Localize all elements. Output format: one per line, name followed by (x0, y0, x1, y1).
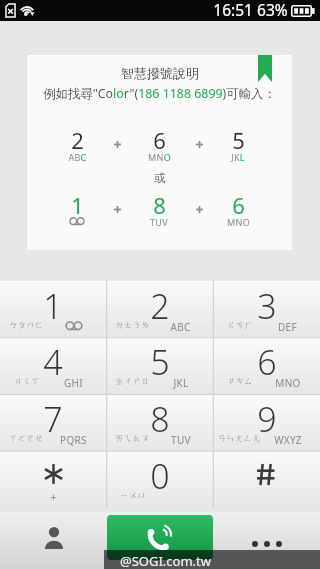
staticText: ㄍㄎㄏ (227, 320, 253, 331)
staticText: 3 (257, 283, 277, 329)
button[interactable]: Contacts (0, 512, 107, 569)
staticText: @SOGI.com.tw (120, 552, 211, 569)
staticText: ㄧㄨㄩ (120, 490, 146, 501)
staticText: 4 (43, 339, 63, 385)
button[interactable]: 6 (213, 337, 320, 394)
staticText: ㄉㄊㄋㄌ (115, 320, 150, 331)
staticText: 或 (154, 171, 166, 185)
button[interactable]: More options (213, 512, 320, 569)
staticText: TUV (150, 216, 168, 228)
staticText: WXYZ (274, 433, 302, 447)
staticText: 2 (150, 283, 170, 329)
staticText: ㄗㄘㄙ (227, 376, 253, 387)
staticText: ㄢㄣㄤㄥㄦ (218, 433, 261, 444)
button[interactable]: + (0, 451, 106, 508)
staticText: DEF (278, 320, 297, 334)
staticText: ㄐㄑㄒ (14, 376, 40, 387)
staticText: TUV (171, 433, 191, 447)
staticText: 例如找尋"Color"(186 1188 6899)可輸入： (43, 85, 276, 102)
staticText: PQRS (60, 433, 87, 447)
staticText: ㄅㄆㄇㄈ (9, 320, 44, 331)
button[interactable]: 0 (106, 451, 213, 508)
staticText: 0 (150, 453, 170, 499)
staticText: 1 (71, 190, 84, 220)
staticText: MNO (227, 216, 250, 228)
staticText: ABC (170, 320, 191, 334)
staticText: MNO (275, 376, 301, 390)
staticText: 智慧撥號說明 (121, 65, 199, 81)
staticText: 6 (232, 190, 245, 220)
staticText: JKL (231, 151, 245, 163)
staticText: JKL (173, 376, 189, 390)
staticText: GHI (64, 376, 83, 390)
button[interactable]: Call (107, 515, 213, 560)
button[interactable]: 5 (106, 337, 213, 394)
staticText: ㄞㄟㄠㄡ (115, 433, 150, 444)
button[interactable]: 4 (0, 337, 106, 394)
staticText: 9 (257, 396, 277, 442)
button[interactable]: 3 (213, 281, 320, 337)
staticText: + (50, 489, 57, 504)
staticText: 6 (153, 125, 166, 155)
staticText: 5 (232, 125, 245, 155)
button[interactable]: 2 (106, 281, 213, 337)
staticText: 8 (153, 190, 166, 220)
button[interactable]: 1 (0, 281, 106, 337)
staticText: ABC (68, 151, 87, 163)
staticText: 5 (150, 339, 170, 385)
button[interactable] (213, 451, 320, 508)
staticText: 2 (71, 125, 84, 155)
staticText: 6 (257, 339, 277, 385)
button[interactable]: 7 (0, 394, 106, 451)
staticText: 7 (43, 396, 63, 442)
staticText: ㄓㄔㄕㄖ (115, 376, 150, 387)
staticText: MNO (148, 151, 171, 163)
button[interactable]: 8 (106, 394, 213, 451)
staticText: 1 (43, 283, 63, 329)
staticText: 8 (150, 396, 170, 442)
staticText: ㄚㄛㄜㄝ (9, 433, 44, 444)
button[interactable]: 9 (213, 394, 320, 451)
staticText: 16:51 63% (213, 0, 288, 20)
